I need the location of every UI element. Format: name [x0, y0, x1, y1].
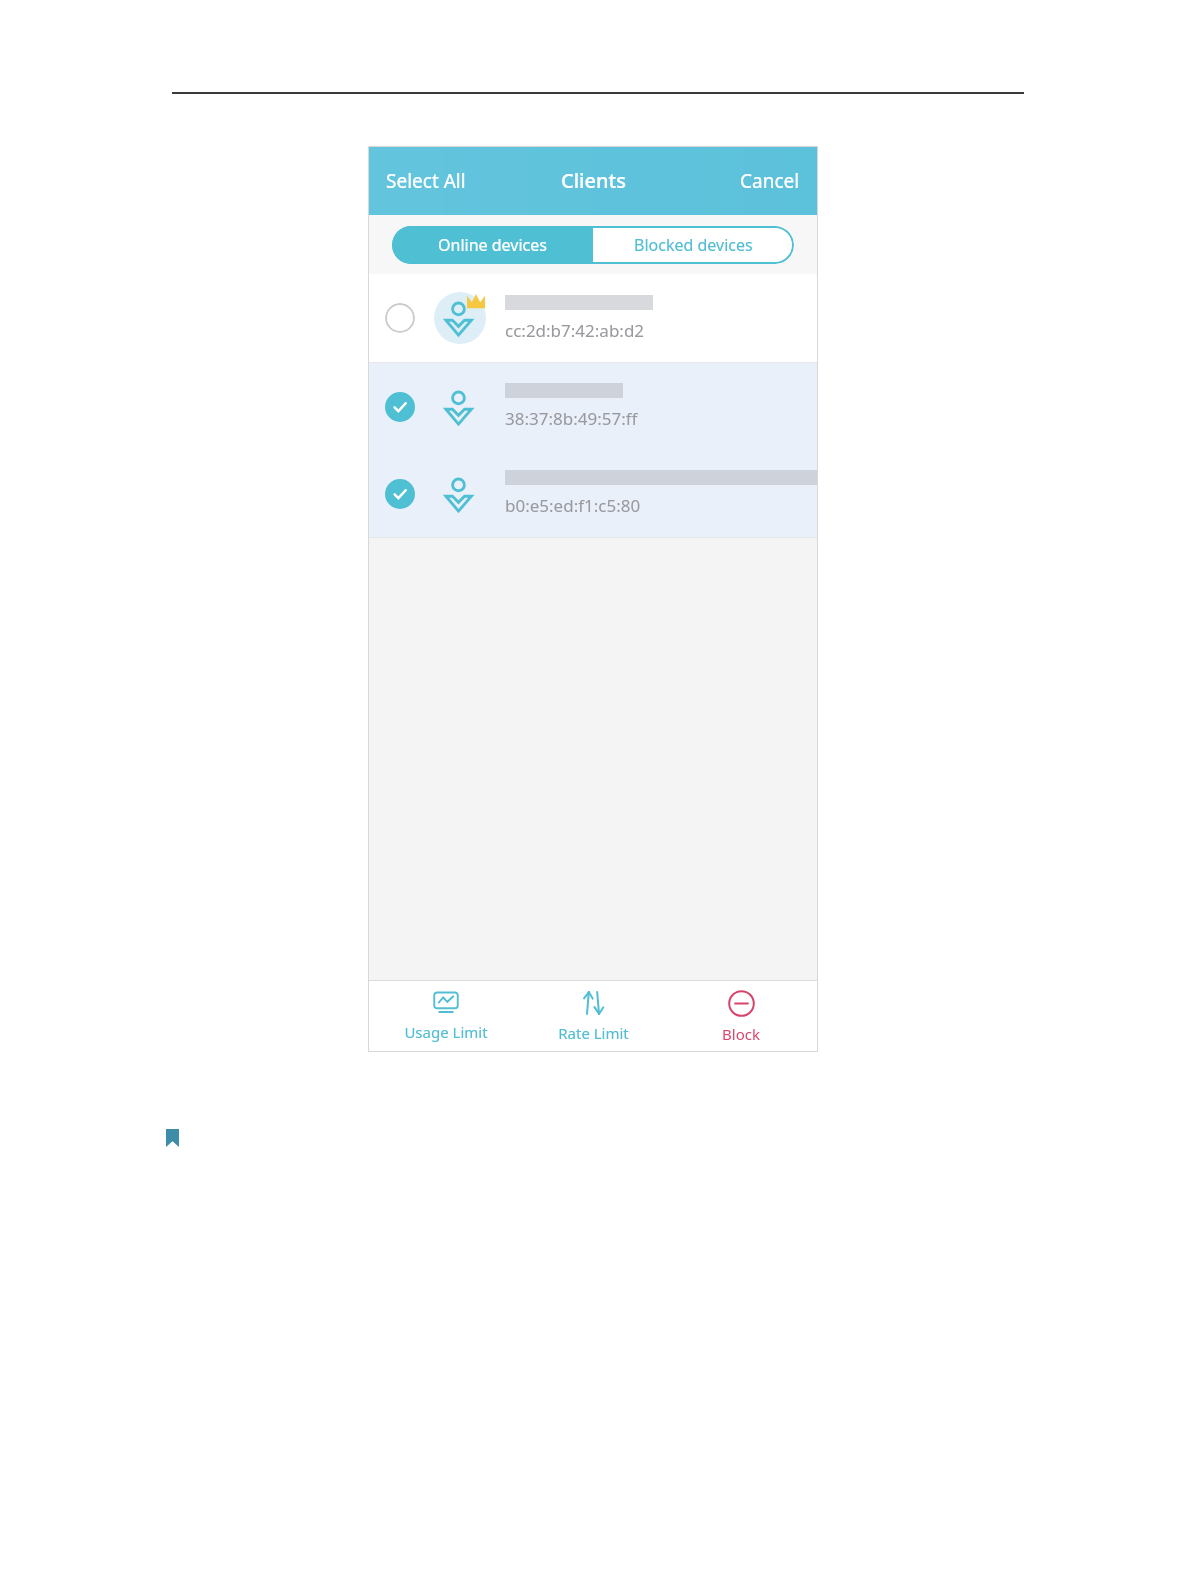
button[interactable]: Rate Limit [523, 981, 663, 1052]
button[interactable]: Selected [385, 479, 415, 509]
staticText: Usage Limit [404, 1022, 488, 1042]
staticText: Cancel [740, 168, 800, 194]
staticText: Rate Limit [558, 1023, 629, 1043]
button[interactable]: Not selected [385, 303, 415, 333]
staticText: Select All [386, 168, 466, 194]
button[interactable]: Block [671, 981, 811, 1052]
button[interactable]: Cancel [722, 154, 818, 208]
staticText: Online devices [438, 234, 547, 256]
staticText: Block [722, 1024, 760, 1044]
staticText: Blocked devices [634, 234, 753, 256]
button[interactable]: Online devices [392, 226, 593, 264]
button[interactable]: Blocked devices [593, 226, 794, 264]
button[interactable]: Usage Limit [376, 981, 516, 1052]
button[interactable]: Selected [368, 363, 818, 450]
button[interactable]: Not selected [368, 274, 818, 362]
staticText: Clients [561, 167, 626, 194]
button[interactable]: Select All [368, 154, 484, 208]
staticText: 38:37:8b:49:57:ff [505, 407, 638, 430]
button[interactable]: Selected [368, 450, 818, 537]
staticText: cc:2d:b7:42:ab:d2 [505, 319, 645, 342]
button[interactable]: Selected [385, 392, 415, 422]
staticText: b0:e5:ed:f1:c5:80 [505, 494, 641, 517]
